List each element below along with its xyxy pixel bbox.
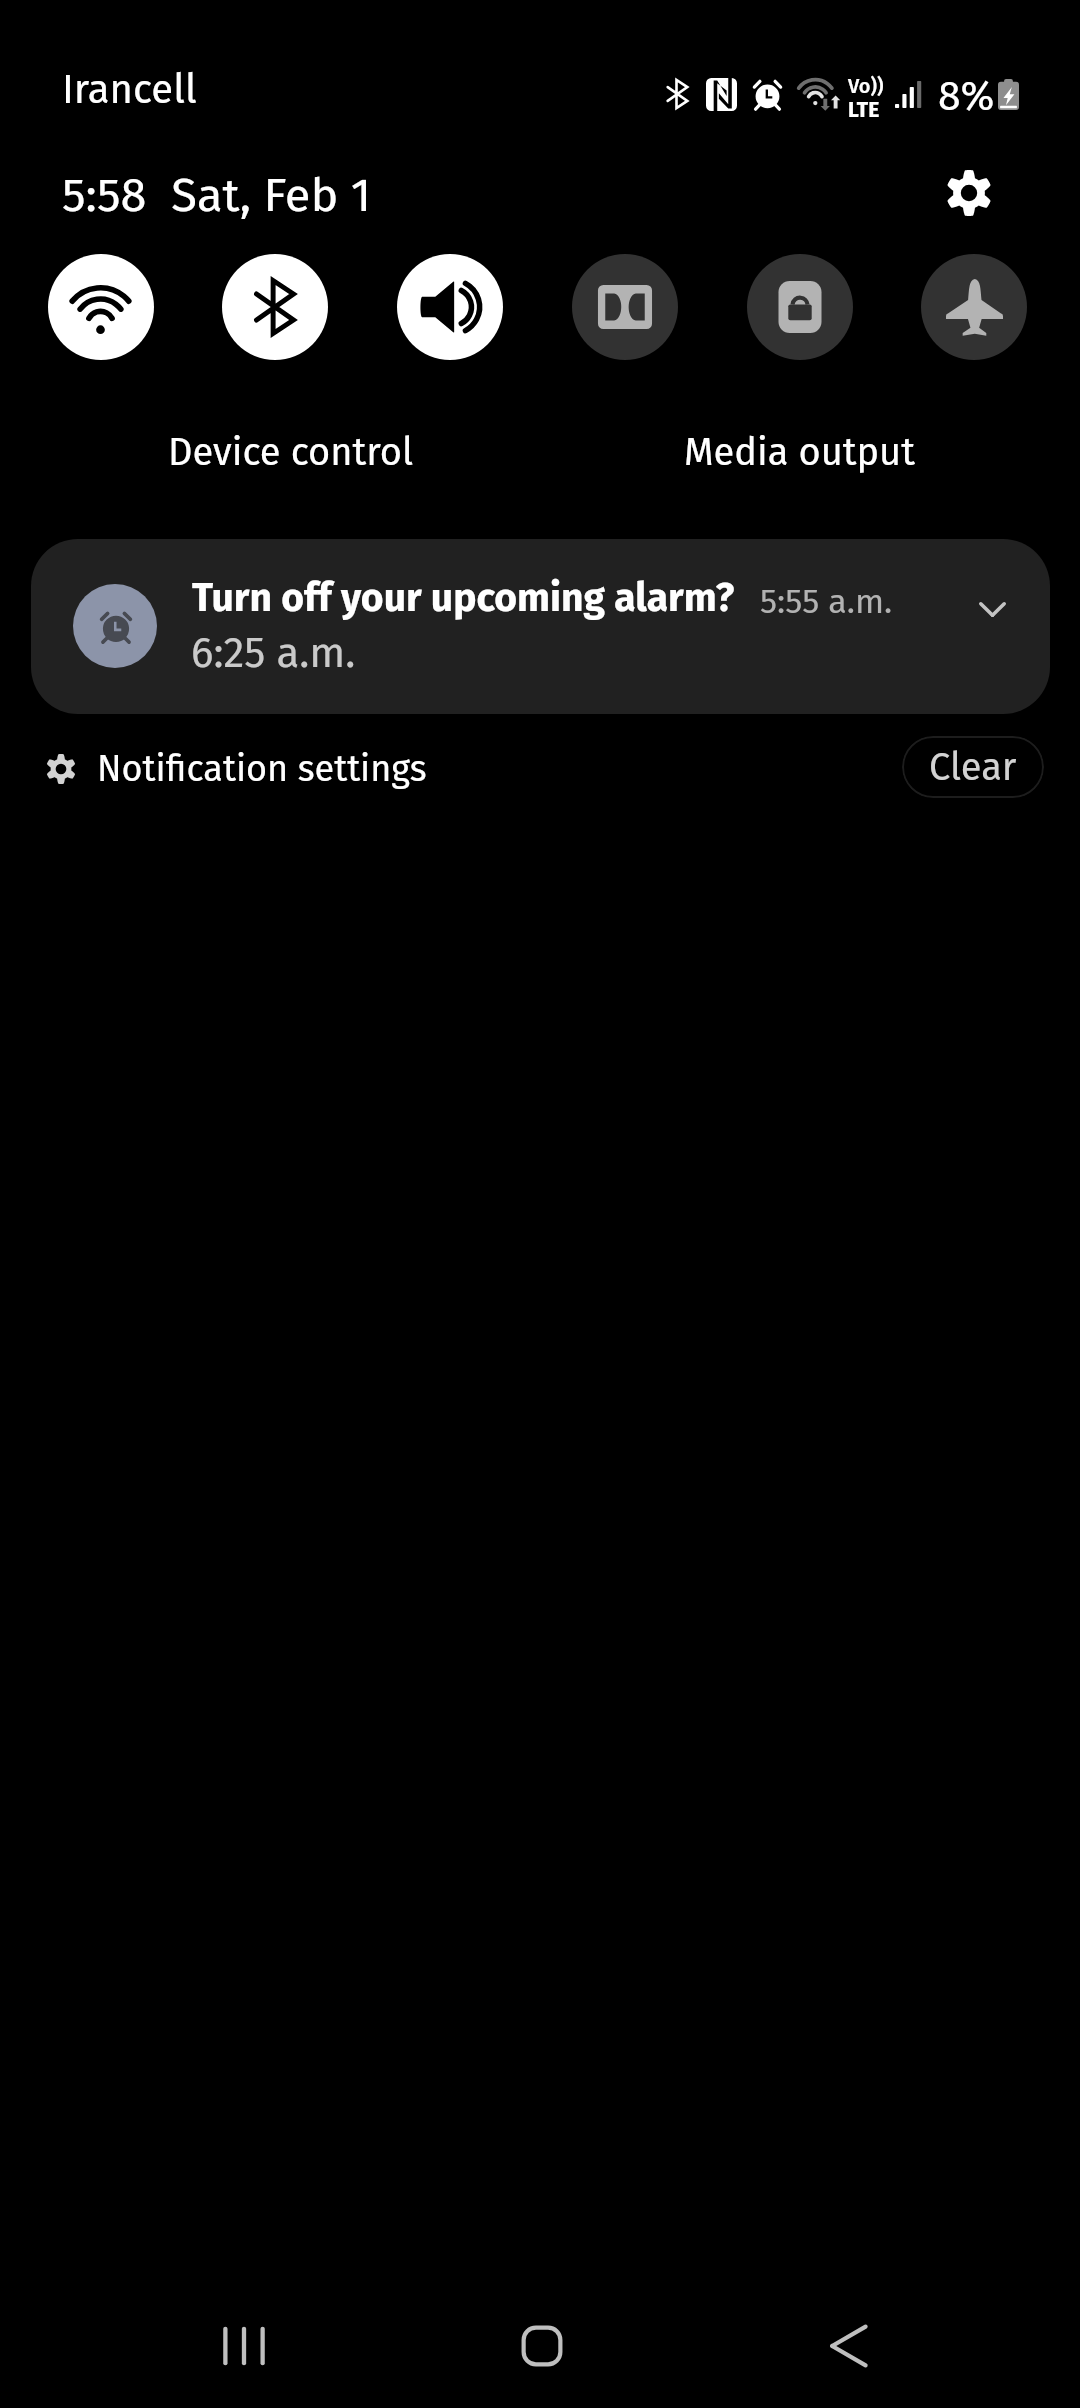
staticText: Irancell [62,66,197,114]
staticText: 6:25 a.m. [191,628,356,678]
button[interactable]: Home [472,2281,612,2408]
staticText: Vo)) [848,74,884,98]
staticText: Turn off your upcoming alarm? [192,575,735,622]
button[interactable]: Wi-Fi [48,254,154,360]
button[interactable]: Media output [648,416,950,488]
staticText: Media output [684,429,915,475]
staticText: 5:58 Sat, Feb 1 [62,167,372,223]
staticText: 5:55 a.m. [760,581,893,622]
button[interactable]: Flight mode [921,254,1027,360]
button[interactable]: Settings [946,170,992,216]
staticText: Device control [168,429,414,475]
button[interactable]: Device control [140,416,442,488]
staticText: Notification settings [97,747,427,790]
staticText: 8% [938,72,995,121]
staticText: Clear [929,744,1017,790]
staticText: LTE [848,97,880,122]
button[interactable]: Turn off your upcoming alarm? [31,539,1050,714]
button[interactable]: Sound [397,254,503,360]
button[interactable]: Recents [174,2281,314,2408]
button[interactable]: Dolby Atmos [572,254,678,360]
button[interactable]: Back [778,2281,918,2408]
button[interactable]: Clear [902,736,1044,798]
button[interactable]: Notification settings [46,735,427,801]
button[interactable]: Screen lock [747,254,853,360]
button[interactable]: Expand notification [948,567,1036,655]
button[interactable]: Bluetooth [222,254,328,360]
